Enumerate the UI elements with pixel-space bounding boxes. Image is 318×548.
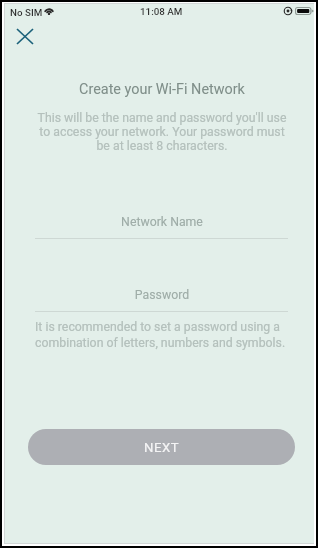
staticText: No SIM — [10, 7, 43, 18]
staticText: Create your Wi-Fi Network — [17, 81, 307, 98]
button[interactable]: Close — [3, 18, 47, 55]
staticText: It is recommended to set a password usin… — [35, 320, 291, 350]
staticText: Network Name — [32, 215, 292, 229]
staticText: This will be the name and password you'l… — [34, 111, 290, 153]
staticText: Password — [32, 288, 292, 302]
staticText: NEXT — [144, 440, 180, 455]
staticText: 11:08 AM — [140, 6, 183, 17]
button[interactable]: NEXT — [28, 429, 295, 465]
